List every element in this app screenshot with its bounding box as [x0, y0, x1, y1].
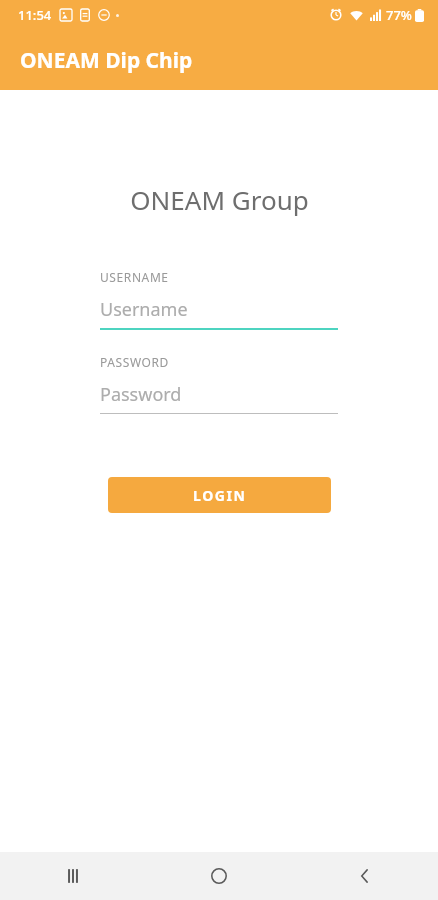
- staticText: Username: [100, 297, 188, 322]
- staticText: LOGIN: [193, 486, 247, 505]
- button[interactable]: Recents: [0, 852, 146, 900]
- staticText: PASSWORD: [100, 354, 169, 370]
- staticText: Password: [100, 382, 182, 407]
- button[interactable]: Back: [292, 852, 438, 900]
- staticText: ONEAM Group: [130, 182, 309, 217]
- button[interactable]: LOGIN: [108, 477, 331, 513]
- staticText: USERNAME: [100, 269, 169, 285]
- staticText: 11:54: [18, 6, 52, 24]
- staticText: 77%: [386, 6, 412, 24]
- button[interactable]: Home: [146, 852, 292, 900]
- button[interactable]: USERNAME: [100, 269, 338, 330]
- button[interactable]: PASSWORD: [100, 354, 338, 414]
- staticText: ONEAM Dip Chip: [20, 46, 193, 75]
